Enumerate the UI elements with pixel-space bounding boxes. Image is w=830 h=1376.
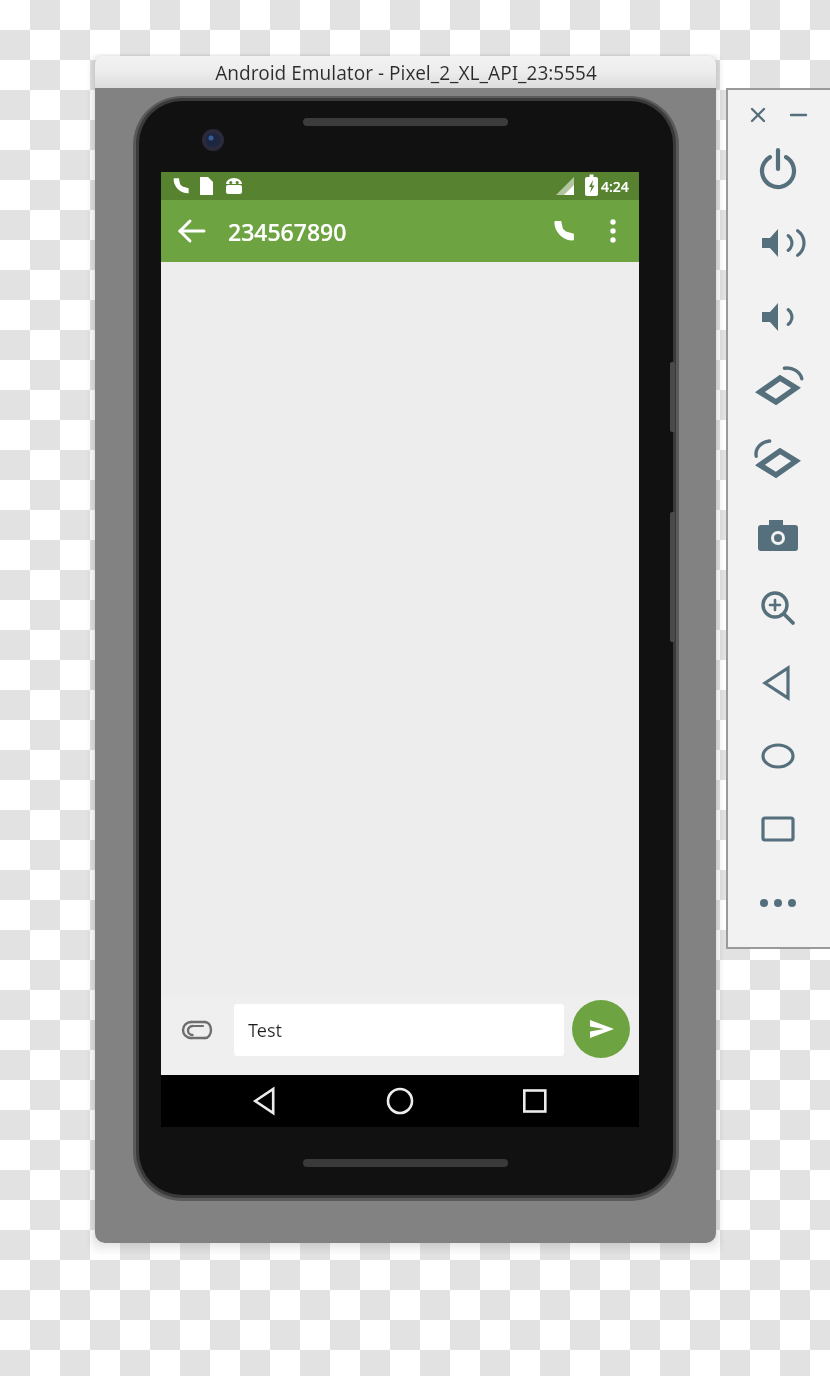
button[interactable]: Call: [534, 200, 592, 262]
button[interactable]: Back: [750, 659, 806, 707]
button[interactable]: Test: [234, 1004, 564, 1056]
button[interactable]: 234567890: [228, 200, 508, 262]
button[interactable]: Minimize: [786, 103, 812, 129]
button[interactable]: Zoom: [750, 585, 806, 633]
staticText: Android Emulator - Pixel_2_XL_API_23:555…: [215, 60, 597, 86]
button[interactable]: Close: [745, 103, 771, 129]
button[interactable]: Power: [750, 146, 806, 194]
button[interactable]: Rotate right: [750, 439, 806, 487]
button[interactable]: Rotate left: [750, 366, 806, 414]
button[interactable]: Overview: [750, 805, 806, 853]
button[interactable]: Home: [360, 1075, 440, 1127]
staticText: 234567890: [228, 216, 347, 247]
staticText: Test: [248, 1018, 283, 1043]
button[interactable]: Volume down: [750, 293, 806, 341]
button[interactable]: Back: [161, 200, 223, 262]
button[interactable]: Back: [225, 1075, 305, 1127]
button[interactable]: Recents: [495, 1075, 575, 1127]
button[interactable]: More options: [592, 200, 639, 262]
button[interactable]: More: [752, 885, 804, 921]
button[interactable]: Home: [750, 732, 806, 780]
button[interactable]: Take screenshot: [750, 512, 806, 560]
button[interactable]: Attach: [172, 1003, 224, 1057]
button[interactable]: Send: [572, 1000, 630, 1058]
button[interactable]: Volume up: [750, 219, 806, 267]
staticText: 4:24: [601, 177, 629, 196]
